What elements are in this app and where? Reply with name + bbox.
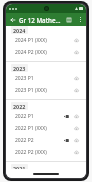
button[interactable]: 2023 P1 (XXX)	[6, 84, 86, 96]
button[interactable]: 2023 P1	[6, 72, 86, 84]
button[interactable]: 2022 P1	[6, 110, 86, 122]
button[interactable]: Download	[71, 85, 81, 95]
staticText: 2022 P2 (XXX)	[15, 149, 71, 156]
staticText: 2022	[13, 103, 26, 109]
button[interactable]: Download	[71, 47, 81, 57]
button[interactable]: 2022 P2	[6, 134, 86, 146]
staticText: 2024 P1 (XXX)	[15, 37, 71, 44]
button[interactable]: Download	[71, 147, 81, 157]
button[interactable]: 2022 P1 (XXX)	[6, 122, 86, 134]
staticText: 2023 P1	[15, 75, 71, 82]
staticText: Gr 12 Mathematics	[19, 16, 63, 24]
staticText: 2021	[13, 165, 26, 169]
button[interactable]: Download	[71, 35, 81, 45]
button[interactable]: 2022 P2 (XXX)	[6, 146, 86, 158]
staticText: 2023	[13, 65, 26, 71]
button[interactable]: Open PDF	[61, 135, 71, 145]
button[interactable]: 2024 P1 (XXX)	[6, 34, 86, 46]
button[interactable]: Download	[71, 111, 81, 121]
staticText: 2022 P1 (XXX)	[15, 125, 71, 132]
button[interactable]: Navigate up	[6, 13, 19, 26]
button[interactable]: 2024 P2 (XXX)	[6, 46, 86, 58]
button[interactable]: Open PDF	[61, 111, 71, 121]
staticText: 2023 P1 (XXX)	[15, 87, 71, 94]
button[interactable]: Bookmark	[63, 14, 75, 26]
staticText: 2022 P2	[15, 137, 61, 144]
button[interactable]: Download	[71, 135, 81, 145]
button[interactable]: More options	[75, 14, 86, 25]
button[interactable]: Download	[71, 73, 81, 83]
staticText: 2024	[13, 27, 26, 33]
staticText: 2022 P1	[15, 113, 61, 120]
staticText: 2024 P2 (XXX)	[15, 49, 71, 56]
button[interactable]: Download	[71, 123, 81, 133]
